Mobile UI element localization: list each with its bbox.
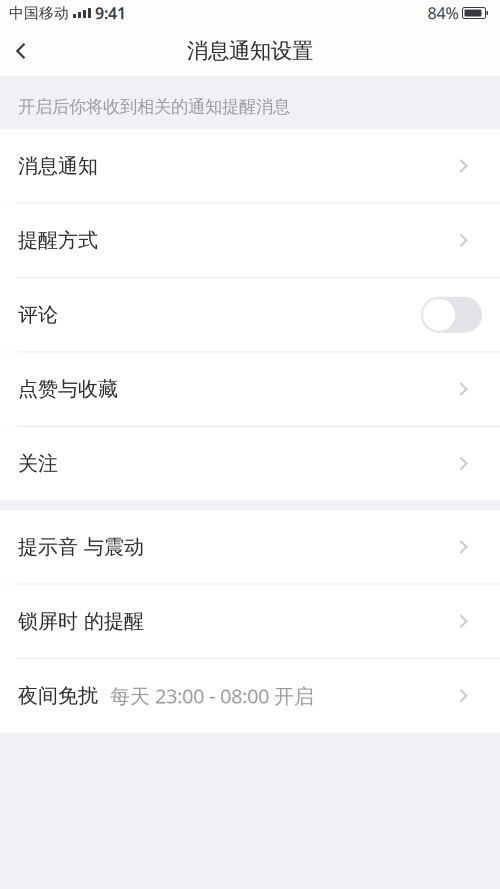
staticText: 9:41 [91,2,126,24]
staticText: 评论 [18,302,58,327]
button[interactable]: Back [0,26,42,76]
staticText: 消息通知设置 [187,38,313,64]
button[interactable]: 评论 [421,297,482,333]
staticText: 84% [427,2,458,24]
staticText: 中国移动 [9,4,69,22]
staticText: 消息通知 [18,154,98,178]
staticText: 夜间免扰 [18,683,98,708]
staticText: 开启后你将收到相关的通知提醒消息 [18,96,290,117]
staticText: 每天 23:00 - 08:00 开启 [98,682,314,709]
staticText: 点赞与收藏 [18,377,118,401]
button[interactable]: 锁屏时 的提醒 [0,585,500,658]
button[interactable]: 关注 [0,427,500,500]
staticText: 提示音 与震动 [18,535,144,559]
staticText: 锁屏时 的提醒 [18,609,144,634]
staticText: 提醒方式 [18,228,98,253]
button[interactable]: 夜间免扰 [0,659,500,732]
button[interactable]: 消息通知 [0,129,500,203]
staticText: 关注 [18,451,58,476]
staticText [458,2,462,24]
button[interactable]: 点赞与收藏 [0,352,500,426]
button[interactable]: 提示音 与震动 [0,510,500,584]
button[interactable]: 提醒方式 [0,204,500,277]
